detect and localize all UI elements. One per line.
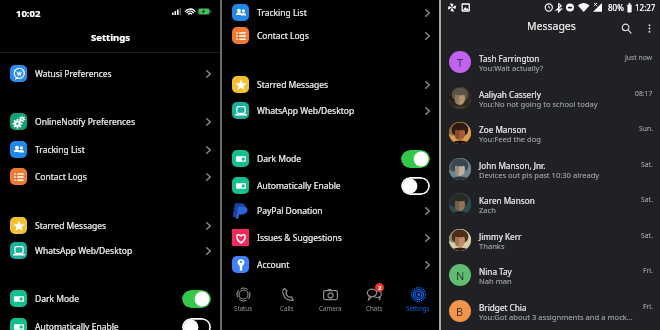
staticText: Settings — [91, 31, 130, 44]
button[interactable]: Account — [222, 252, 439, 278]
staticText: Starred Messages — [257, 79, 329, 91]
staticText: Karen Manson — [479, 195, 607, 206]
button[interactable]: John Manson, Jnr. — [441, 150, 660, 186]
staticText: Tracking List — [257, 7, 307, 19]
staticText: N — [456, 268, 465, 283]
button[interactable]: Aaliyah Casserly — [441, 79, 660, 115]
staticText: Automatically Enable — [257, 180, 341, 192]
staticText: Jimmy Kerr — [479, 231, 607, 242]
staticText: Sat. — [641, 195, 653, 204]
button[interactable]: Starred Messages — [222, 72, 439, 98]
staticText: You:No not going to school today — [479, 99, 634, 109]
button[interactable]: Automatically Enable — [222, 173, 439, 199]
staticText: Zach — [479, 205, 634, 215]
button[interactable]: Jimmy Kerr — [441, 221, 660, 257]
staticText: Account — [257, 259, 290, 271]
staticText: Sat. — [641, 160, 653, 169]
staticText: Bridget Chia — [479, 302, 607, 313]
staticText: Aaliyah Casserly — [479, 89, 607, 100]
button[interactable]: Karen Manson — [441, 185, 660, 221]
button[interactable]: OnlineNotify Preferences — [0, 109, 220, 135]
button[interactable]: Issues & Suggestions — [222, 225, 439, 251]
staticText: 08:17 — [635, 89, 653, 98]
staticText: Status — [234, 304, 253, 312]
staticText: Watusi Preferences — [35, 68, 112, 80]
button[interactable]: WhatsApp Web/Desktop — [222, 98, 439, 124]
staticText: Devices out pls past 10:30 already — [479, 170, 634, 180]
staticText: Zoe Manson — [479, 124, 607, 135]
button[interactable]: Automatically Enable — [0, 314, 220, 330]
staticText: Sun. — [639, 124, 653, 133]
button[interactable]: Camera — [308, 282, 352, 316]
staticText: Settings — [406, 304, 430, 312]
button[interactable]: Zoe Manson — [441, 114, 660, 150]
button[interactable]: Contact Logs — [222, 23, 439, 49]
button[interactable]: Dark Mode — [0, 286, 220, 312]
staticText: Calls — [280, 304, 294, 312]
staticText: Nah man — [479, 276, 634, 286]
staticText: Fri. — [643, 302, 653, 311]
button[interactable]: Switch off — [401, 177, 430, 195]
button[interactable]: Starred Messages — [0, 213, 220, 239]
staticText: T — [457, 55, 464, 70]
button[interactable]: Search — [617, 19, 635, 37]
staticText: 12:27 — [635, 2, 656, 13]
button[interactable]: PayPal Donation — [222, 198, 439, 224]
staticText: Sat. — [641, 231, 653, 240]
staticText: Tracking List — [35, 144, 85, 156]
button[interactable]: Switch off — [182, 318, 211, 330]
staticText: WhatsApp Web/Desktop — [35, 245, 133, 257]
button[interactable]: Switch on — [401, 150, 430, 168]
other: Calls — [280, 287, 295, 302]
staticText: 80% — [608, 2, 624, 13]
button[interactable]: Settings — [396, 282, 440, 316]
button[interactable]: N — [441, 256, 660, 292]
staticText: Issues & Suggestions — [257, 232, 342, 244]
staticText: OnlineNotify Preferences — [35, 116, 135, 128]
button[interactable]: WhatsApp Web/Desktop — [0, 238, 220, 264]
button[interactable]: More options — [640, 19, 658, 37]
button[interactable]: Tracking List — [222, 0, 439, 26]
other: Camera — [323, 287, 338, 302]
staticText: 2 — [378, 284, 382, 292]
staticText: Dark Mode — [35, 293, 80, 305]
button[interactable]: Chats — [352, 282, 396, 316]
button[interactable]: Status — [221, 282, 265, 316]
button[interactable]: Contact Logs — [0, 164, 220, 190]
staticText: Nina Tay — [479, 266, 607, 277]
staticText: Contact Logs — [35, 171, 87, 183]
staticText: Fri. — [643, 266, 653, 275]
staticText: You:Got about 3 assignments and a mock e… — [479, 312, 634, 322]
staticText: Just now — [625, 53, 653, 62]
other: Chats — [367, 287, 382, 302]
staticText: Contact Logs — [257, 30, 309, 42]
staticText: You:Feed the dog — [479, 134, 634, 144]
staticText: Messages — [527, 19, 576, 33]
other: Status — [236, 287, 251, 302]
staticText: B — [456, 304, 464, 319]
button[interactable]: Dark Mode — [222, 146, 439, 172]
staticText: You:Wait actually? — [479, 63, 634, 73]
button[interactable]: Switch on — [182, 290, 211, 308]
staticText: Automatically Enable — [35, 321, 119, 330]
button[interactable]: B — [441, 292, 660, 328]
other: Settings — [411, 287, 426, 302]
staticText: Tash Farrington — [479, 53, 607, 64]
button[interactable]: Tracking List — [0, 137, 220, 163]
button[interactable]: Watusi Preferences — [0, 61, 220, 87]
staticText: John Manson, Jnr. — [479, 160, 607, 171]
staticText: Camera — [319, 304, 342, 312]
staticText: Dark Mode — [257, 153, 302, 165]
staticText: WhatsApp Web/Desktop — [257, 105, 355, 117]
button[interactable]: T — [441, 43, 660, 79]
button[interactable]: Calls — [265, 282, 309, 316]
staticText: Starred Messages — [35, 220, 107, 232]
staticText: Thanks — [479, 241, 634, 251]
staticText: PayPal Donation — [257, 205, 323, 217]
staticText: Chats — [366, 304, 383, 312]
staticText: 10:02 — [16, 7, 41, 20]
